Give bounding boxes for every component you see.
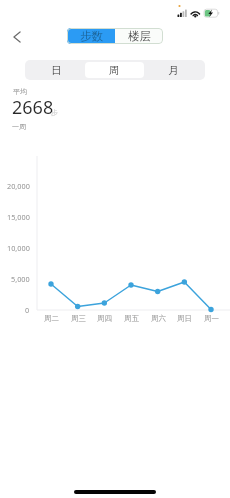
staticText: 周	[109, 64, 120, 77]
button[interactable]: 日	[27, 62, 85, 78]
staticText: 2668	[12, 95, 54, 120]
staticText: 一周	[12, 122, 26, 131]
staticText: 0	[25, 305, 30, 315]
button[interactable]: 月	[144, 62, 203, 78]
staticText: 20,000	[7, 181, 30, 191]
staticText: 15,000	[7, 212, 30, 222]
button[interactable]: 周	[85, 62, 144, 78]
staticText: 月	[168, 64, 179, 77]
staticText: 平均	[13, 87, 27, 96]
staticText: 周六	[151, 314, 166, 323]
staticText: 步	[51, 108, 58, 117]
staticText: 周四	[97, 314, 112, 323]
staticText: 周五	[124, 314, 139, 323]
staticText: 周日	[177, 314, 192, 323]
staticText: 周一	[204, 314, 219, 323]
staticText: 10,000	[7, 243, 30, 253]
button[interactable]: 步数	[67, 28, 115, 44]
staticText: 步数	[80, 29, 103, 43]
staticText: 周三	[71, 314, 86, 323]
button[interactable]: Back	[5, 25, 29, 49]
staticText: 日	[51, 64, 62, 77]
staticText: 楼层	[128, 29, 151, 43]
staticText: 5,000	[11, 274, 30, 284]
button[interactable]: 楼层	[115, 28, 163, 44]
staticText: 周二	[44, 314, 59, 323]
